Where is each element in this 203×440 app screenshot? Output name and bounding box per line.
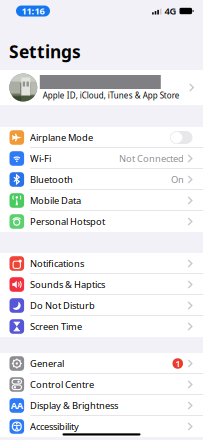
staticText: Mobile Data xyxy=(30,194,81,207)
staticText: 1 xyxy=(175,357,180,370)
button[interactable]: Apple ID, iCloud, iTunes & App Store xyxy=(0,70,203,105)
staticText: Sounds & Haptics xyxy=(30,278,105,291)
button[interactable]: Airplane Mode xyxy=(0,127,203,148)
staticText: Do Not Disturb xyxy=(30,299,95,312)
staticText: Airplane Mode xyxy=(30,131,93,144)
button[interactable]: Screen Time xyxy=(0,316,203,337)
staticText: On xyxy=(171,173,184,186)
button[interactable]: Wi-Fi xyxy=(0,148,203,169)
staticText: Screen Time xyxy=(30,320,82,333)
button[interactable]: Bluetooth xyxy=(0,169,203,190)
staticText: General xyxy=(30,357,64,370)
staticText: Display & Brightness xyxy=(30,399,118,412)
staticText: 11:16 xyxy=(21,5,44,17)
button[interactable]: General xyxy=(0,353,203,374)
staticText: Settings xyxy=(9,40,81,63)
button[interactable]: AA xyxy=(0,395,203,416)
button[interactable]: Mobile Data xyxy=(0,190,203,211)
staticText: 4G xyxy=(164,5,176,17)
staticText: Notifications xyxy=(30,257,84,270)
staticText: Not Connected xyxy=(119,152,184,165)
button[interactable]: Sounds & Haptics xyxy=(0,274,203,295)
staticText: Control Centre xyxy=(30,378,94,391)
staticText: Apple ID, iCloud, iTunes & App Store xyxy=(43,90,180,101)
staticText: Bluetooth xyxy=(30,173,73,186)
button[interactable]: Accessibility xyxy=(0,416,203,437)
staticText: Accessibility xyxy=(30,420,79,433)
button[interactable]: Personal Hotspot xyxy=(0,211,203,232)
button[interactable]: Notifications xyxy=(0,253,203,274)
staticText: Wi-Fi xyxy=(30,152,51,165)
button[interactable]: Control Centre xyxy=(0,374,203,395)
staticText: AA xyxy=(11,399,23,412)
staticText: Personal Hotspot xyxy=(30,215,105,228)
button[interactable]: Do Not Disturb xyxy=(0,295,203,316)
